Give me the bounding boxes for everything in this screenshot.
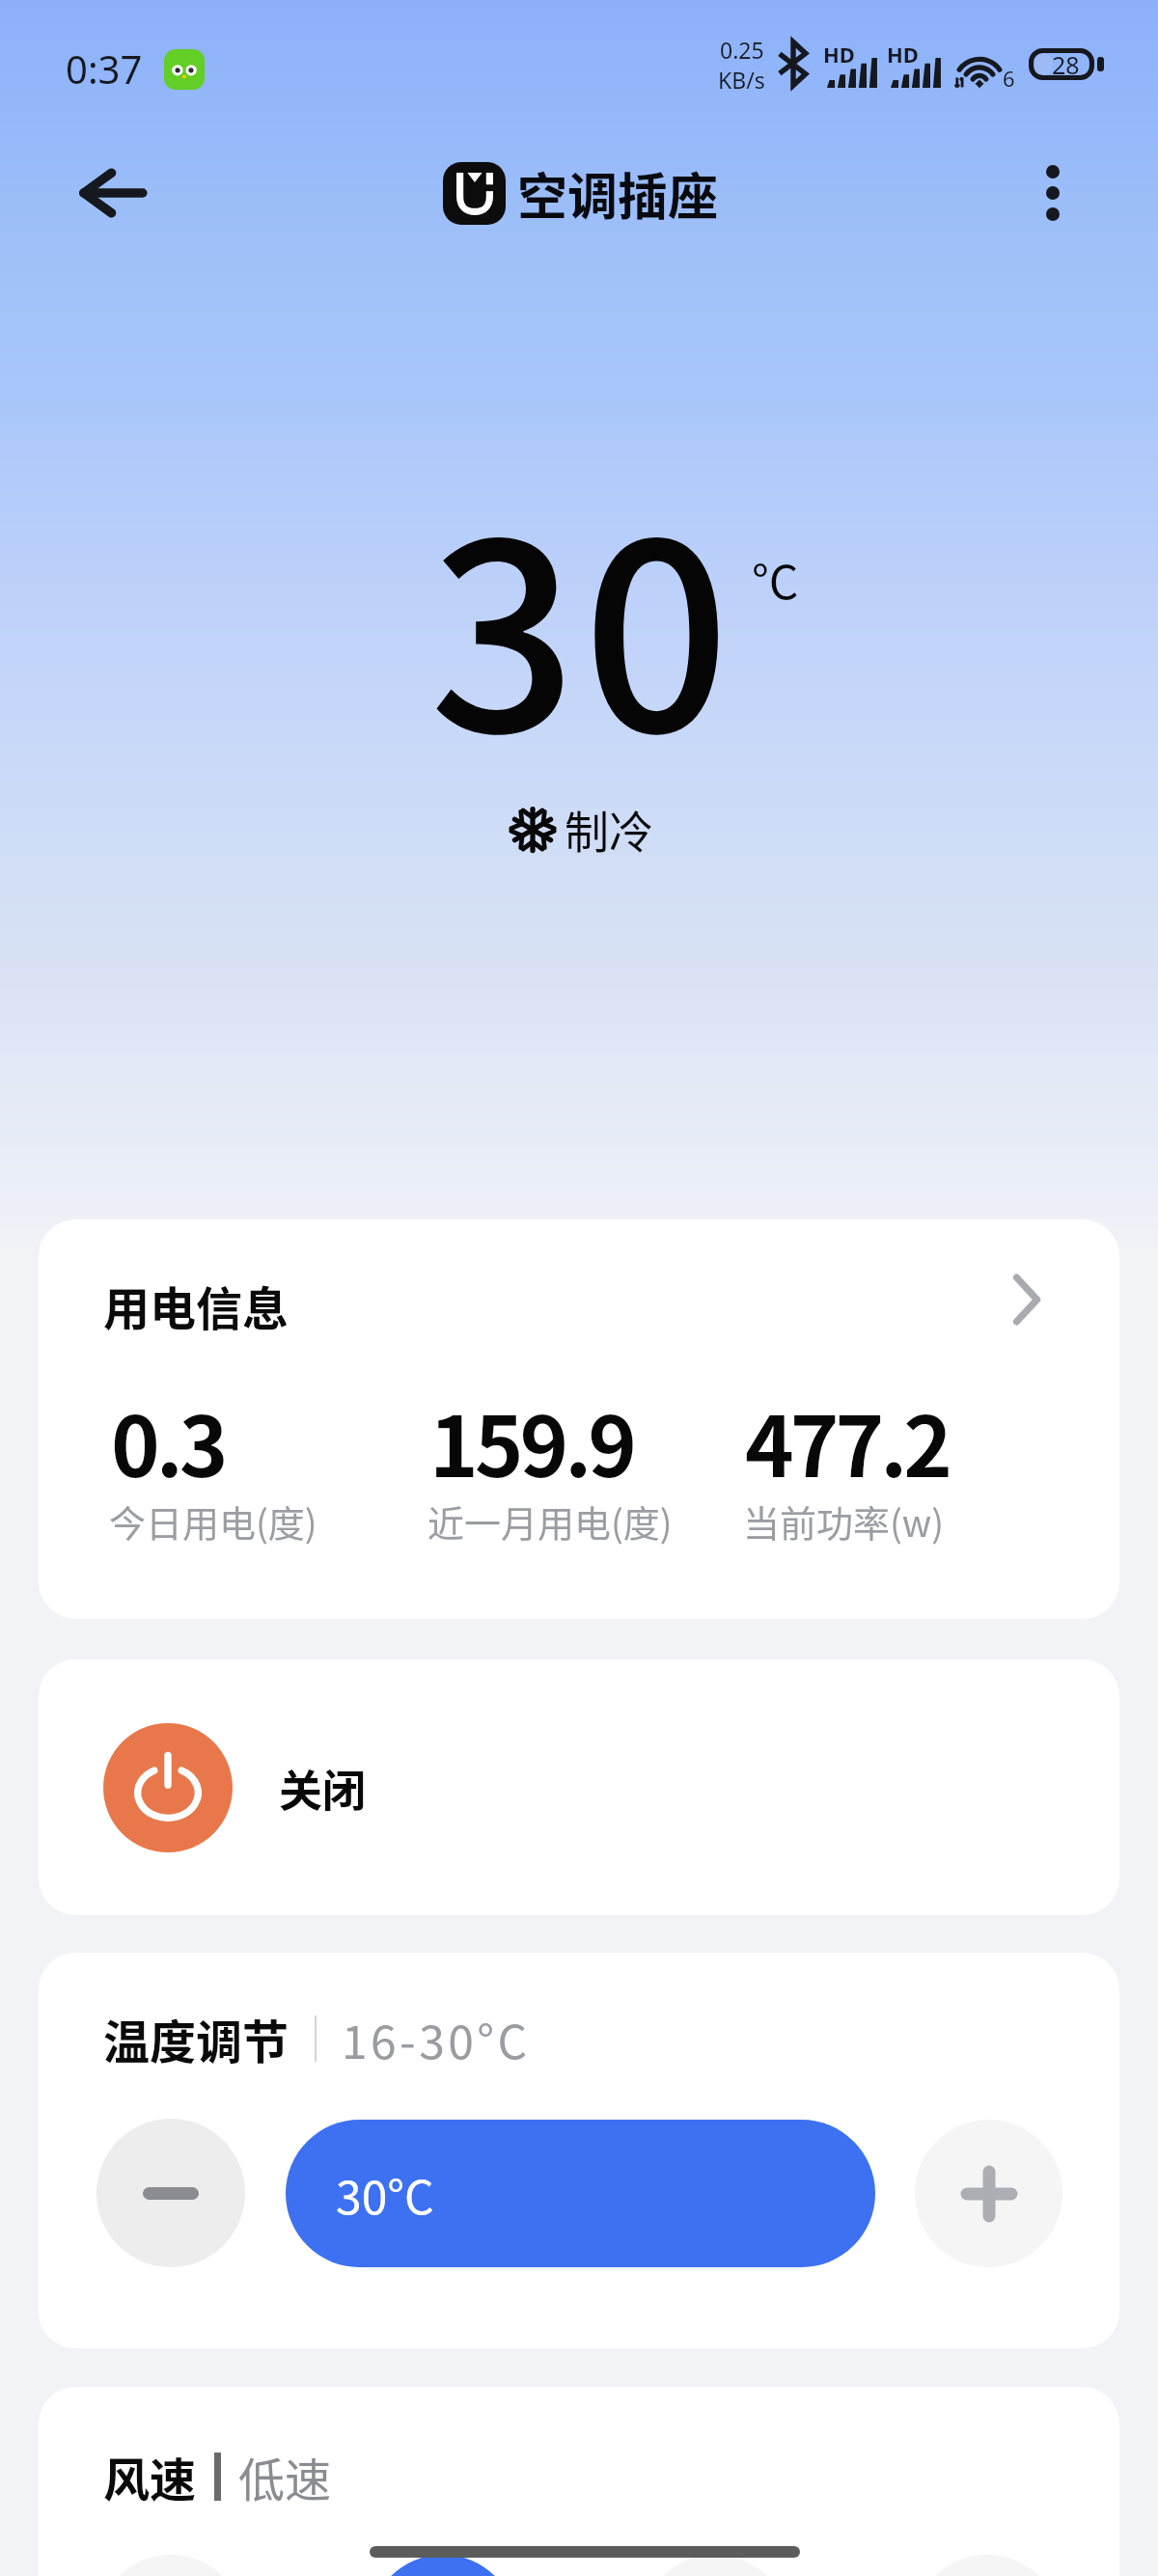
staticText: HD [823,40,855,69]
staticText: 关闭 [279,1757,367,1820]
staticText: 空调插座 [517,157,719,230]
staticText: 159.9 [429,1381,633,1501]
button[interactable]: Decrease temperature [96,2119,245,2267]
button[interactable]: 关闭 [103,1723,367,1852]
staticText: 477.2 [745,1381,949,1501]
staticText: 制冷 [565,797,653,862]
staticText: 16-30°C [342,2005,531,2072]
button[interactable]: 30°C [286,2120,875,2267]
staticText: 0.25 [720,35,764,65]
staticText: 低速 [238,2443,332,2510]
staticText: 近一月用电(度) [427,1494,673,1548]
staticText: 30°C [336,2160,434,2228]
button[interactable]: Back [50,130,176,256]
staticText: 温度调节 [103,2005,289,2072]
staticText: 0:37 [66,42,143,95]
button[interactable]: Fan speed auto [96,2555,245,2576]
button[interactable]: Fan speed low [369,2555,517,2576]
staticText: 30 [429,431,736,806]
staticText: °C [752,545,799,613]
button[interactable]: 用电信息 [39,1219,1119,1619]
staticText: 0.3 [111,1381,225,1501]
button[interactable]: More options [1000,140,1106,246]
staticText: 今日用电(度) [109,1494,317,1548]
staticText: HD [887,40,919,69]
staticText: KB/s [718,65,765,93]
button[interactable]: Increase temperature [915,2120,1062,2267]
staticText: 28 [1052,48,1080,80]
button[interactable]: Fan speed medium [641,2555,789,2576]
staticText: 用电信息 [103,1272,289,1339]
staticText: 当前功率(w) [743,1494,945,1548]
button[interactable]: Fan speed high [913,2555,1061,2576]
staticText: 风速 [103,2443,197,2510]
staticText: 6 [1003,64,1015,93]
